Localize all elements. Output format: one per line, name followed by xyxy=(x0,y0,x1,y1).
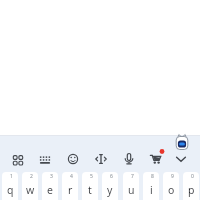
button[interactable]: 4 xyxy=(62,172,78,200)
staticText: 6 xyxy=(110,173,113,180)
button[interactable] xyxy=(171,149,191,171)
staticText: 0 xyxy=(191,173,194,180)
button[interactable]: 0 xyxy=(183,172,199,200)
staticText: y xyxy=(107,183,113,197)
button[interactable] xyxy=(63,149,83,171)
button[interactable]: 5 xyxy=(82,172,98,200)
staticText: t xyxy=(88,183,92,197)
staticText: w xyxy=(26,183,35,197)
staticText: u xyxy=(128,183,135,197)
button[interactable]: 3 xyxy=(42,172,58,200)
staticText: e xyxy=(47,183,53,197)
button[interactable] xyxy=(8,149,28,171)
button[interactable]: 7 xyxy=(123,172,139,200)
staticText: 2 xyxy=(30,173,33,180)
button[interactable]: 6 xyxy=(102,172,118,200)
staticText: 3 xyxy=(50,173,53,180)
staticText: 9 xyxy=(171,173,174,180)
button[interactable] xyxy=(119,149,139,171)
staticText: i xyxy=(150,183,153,197)
button[interactable] xyxy=(35,149,55,171)
staticText: r xyxy=(68,183,73,197)
staticText: 7 xyxy=(131,173,134,180)
button[interactable]: 2 xyxy=(22,172,38,200)
staticText: 4 xyxy=(70,173,73,180)
button[interactable] xyxy=(173,131,191,151)
staticText: o xyxy=(168,183,175,197)
button[interactable] xyxy=(91,149,111,171)
staticText: 1 xyxy=(10,173,13,180)
button[interactable] xyxy=(146,149,166,171)
button[interactable]: 9 xyxy=(163,172,179,200)
button[interactable]: 8 xyxy=(143,172,159,200)
staticText: q xyxy=(7,183,14,197)
staticText: 5 xyxy=(90,173,93,180)
staticText: 8 xyxy=(151,173,154,180)
staticText: p xyxy=(188,183,195,197)
button[interactable]: 1 xyxy=(2,172,18,200)
